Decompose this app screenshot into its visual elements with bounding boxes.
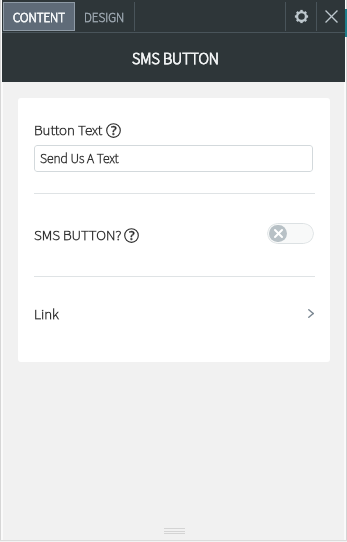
- button[interactable]: DESIGN: [75, 2, 134, 31]
- staticText: ?: [111, 122, 117, 137]
- staticText: ?: [129, 227, 135, 242]
- staticText: Send Us A Text: [40, 149, 119, 168]
- button[interactable]: SMS button toggle: [267, 223, 314, 244]
- staticText: CONTENT: [13, 9, 66, 28]
- button[interactable]: Link: [18, 277, 330, 362]
- staticText: Send Us A Text: [40, 149, 119, 168]
- other: Open link: [308, 309, 314, 318]
- button[interactable]: Close: [317, 2, 345, 31]
- staticText: CONTENT: [13, 9, 66, 28]
- staticText: Button Text: [34, 120, 103, 141]
- button[interactable]: Send Us A Text: [34, 145, 313, 172]
- button[interactable]: SMS BUTTON?: [18, 194, 330, 276]
- button[interactable]: Settings: [286, 2, 316, 31]
- staticText: DESIGN: [84, 9, 125, 28]
- staticText: DESIGN: [84, 9, 125, 28]
- staticText: Link: [34, 304, 59, 325]
- staticText: SMS BUTTON?: [34, 225, 122, 246]
- staticText: SMS BUTTON?: [34, 225, 122, 246]
- staticText: Link: [34, 304, 59, 325]
- staticText: SMS BUTTON: [132, 48, 219, 71]
- button[interactable]: CONTENT: [3, 2, 75, 31]
- staticText: Button Text: [34, 120, 103, 141]
- staticText: SMS BUTTON: [132, 48, 219, 71]
- staticText: ?: [111, 122, 117, 137]
- staticText: ?: [129, 227, 135, 242]
